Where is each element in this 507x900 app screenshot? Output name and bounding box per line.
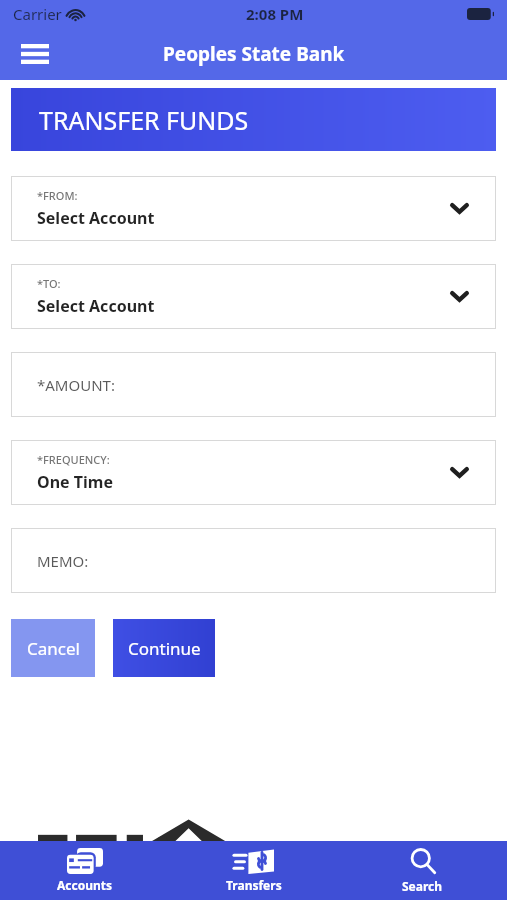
other: Expand *FROM: bbox=[450, 203, 469, 214]
staticText: MEMO: bbox=[37, 551, 89, 571]
staticText: Select Account bbox=[37, 207, 155, 229]
button[interactable]: MEMO: bbox=[11, 528, 496, 593]
staticText: Search bbox=[402, 878, 443, 894]
button[interactable]: *TO: bbox=[11, 264, 496, 329]
staticText: *FROM: bbox=[37, 188, 78, 203]
staticText: TRANSFER FUNDS bbox=[39, 103, 249, 137]
staticText: 2:08 PM bbox=[246, 4, 304, 24]
staticText: Continue bbox=[128, 637, 201, 660]
button[interactable]: *FROM: bbox=[11, 176, 496, 241]
staticText: Peoples State Bank bbox=[163, 41, 345, 67]
staticText: *FREQUENCY: bbox=[37, 452, 110, 467]
staticText: One Time bbox=[37, 471, 113, 493]
button[interactable]: Continue bbox=[113, 619, 215, 677]
staticText: *TO: bbox=[37, 276, 61, 291]
button[interactable]: *AMOUNT: bbox=[11, 352, 496, 417]
button[interactable]: Cancel bbox=[11, 619, 95, 677]
staticText: Cancel bbox=[27, 637, 80, 660]
button[interactable]: *FREQUENCY: bbox=[11, 440, 496, 505]
button[interactable]: Accounts bbox=[0, 841, 169, 900]
other: Expand *TO: bbox=[450, 291, 469, 302]
staticText: Accounts bbox=[57, 877, 113, 893]
button[interactable]: Open navigation menu bbox=[14, 33, 56, 75]
button[interactable]: Transfers bbox=[169, 841, 338, 900]
staticText: *AMOUNT: bbox=[37, 375, 115, 395]
staticText: Carrier bbox=[13, 4, 62, 24]
other: Expand *FREQUENCY: bbox=[450, 467, 469, 478]
button[interactable]: Search bbox=[338, 841, 507, 900]
staticText: Transfers bbox=[226, 877, 282, 893]
staticText: Select Account bbox=[37, 295, 155, 317]
